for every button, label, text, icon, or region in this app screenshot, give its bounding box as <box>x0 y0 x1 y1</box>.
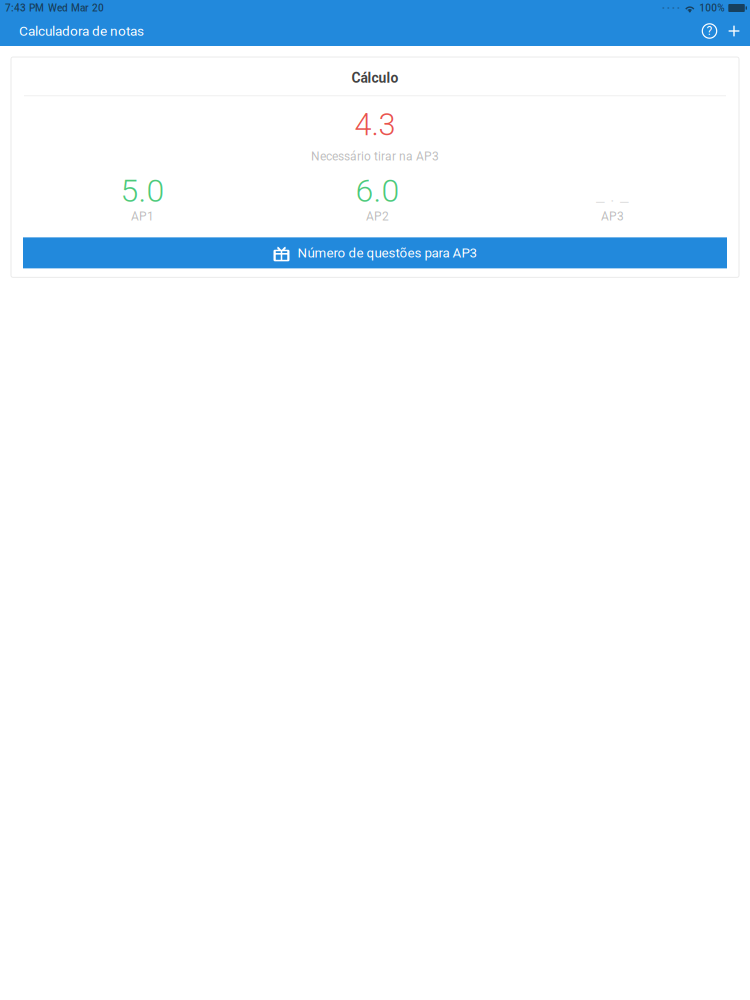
staticText: 7:43 PM <box>5 2 44 14</box>
staticText: Necessário tirar na AP3 <box>311 149 439 163</box>
staticText: 6.0 <box>355 172 399 210</box>
staticText: 4.3 <box>354 107 395 143</box>
button[interactable]: Número de questões para AP3 <box>23 237 727 268</box>
staticText: AP2 <box>366 209 389 223</box>
button[interactable]: Help <box>698 19 721 42</box>
staticText: Calculadora de notas <box>19 23 144 39</box>
staticText: _ . _ <box>596 183 629 206</box>
staticText: AP1 <box>131 209 154 223</box>
staticText: 5.0 <box>120 172 164 210</box>
staticText: 100% <box>699 2 724 14</box>
staticText: Número de questões para AP3 <box>297 245 476 261</box>
staticText: ? <box>706 24 712 38</box>
staticText: AP3 <box>601 209 624 223</box>
button[interactable]: Add <box>723 20 745 42</box>
staticText: Wed Mar 20 <box>48 2 104 14</box>
staticText: Cálculo <box>351 70 398 86</box>
